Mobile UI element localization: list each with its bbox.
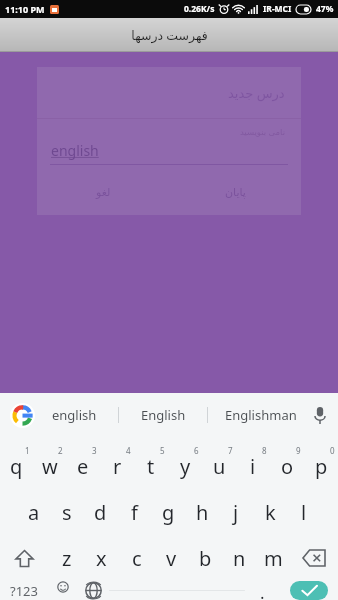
button[interactable]: z (49, 535, 84, 581)
staticText: Englishman (225, 406, 297, 424)
staticText: w (42, 453, 58, 480)
staticText: ?123 (10, 582, 38, 600)
button[interactable]: g (151, 489, 185, 535)
staticText: english (52, 406, 97, 424)
button[interactable]: Google search (10, 403, 35, 428)
staticText: 7 (228, 445, 233, 456)
button[interactable]: Voice input (308, 403, 332, 427)
button[interactable]: w (33, 443, 66, 489)
button[interactable]: j (219, 489, 253, 535)
staticText: k (265, 499, 276, 526)
button[interactable]: a (17, 489, 50, 535)
staticText: 4 (126, 445, 131, 456)
button[interactable]: . (245, 581, 279, 600)
staticText: English (141, 406, 186, 424)
button[interactable]: d (83, 489, 117, 535)
button[interactable]: y (168, 443, 202, 489)
staticText: لغو (96, 186, 111, 199)
button[interactable]: m (256, 535, 290, 581)
button[interactable]: t (134, 443, 168, 489)
button[interactable]: i (236, 443, 270, 489)
button[interactable]: r (100, 443, 134, 489)
staticText: m (264, 545, 283, 572)
button[interactable]: o (270, 443, 304, 489)
staticText: 0 (330, 445, 335, 456)
button[interactable]: f (117, 489, 151, 535)
staticText: english (51, 141, 99, 160)
staticText: j (233, 499, 239, 526)
staticText: 5 (160, 445, 165, 456)
staticText: l (301, 499, 307, 526)
staticText: 2 (58, 445, 63, 456)
button[interactable]: b (188, 535, 222, 581)
staticText: q (10, 453, 23, 480)
button[interactable]: Shift (0, 535, 49, 581)
button[interactable]: h (185, 489, 219, 535)
button[interactable]: v (154, 535, 188, 581)
button[interactable]: p (304, 443, 338, 489)
staticText: e (77, 453, 89, 480)
staticText: 6 (194, 445, 199, 456)
button[interactable]: s (50, 489, 83, 535)
button[interactable]: q (0, 443, 33, 489)
button[interactable]: n (222, 535, 256, 581)
staticText: i (250, 453, 256, 480)
staticText: u (213, 453, 226, 480)
staticText: . (260, 581, 265, 600)
button[interactable]: x (84, 535, 119, 581)
staticText: 8 (262, 445, 267, 456)
staticText: x (96, 545, 107, 572)
staticText: درس جدید (228, 84, 285, 102)
button[interactable]: l (287, 489, 321, 535)
staticText: پایان (225, 186, 246, 199)
staticText: b (199, 545, 212, 572)
staticText: فهرست درسها (131, 27, 208, 44)
staticText: v (166, 545, 177, 572)
staticText: 11:10 PM (5, 3, 45, 15)
button[interactable]: english (30, 393, 118, 437)
button[interactable]: Change language (78, 581, 109, 600)
staticText: n (233, 545, 246, 572)
button[interactable]: k (253, 489, 287, 535)
staticText: 0.26K/s (184, 3, 215, 15)
staticText: s (62, 499, 72, 526)
staticText: 1 (25, 445, 30, 456)
staticText: r (113, 453, 122, 480)
staticText: p (315, 453, 328, 480)
button[interactable]: Emoji (47, 581, 78, 600)
staticText: t (147, 453, 155, 480)
staticText: y (180, 453, 191, 480)
staticText: IR-MCI (263, 3, 292, 15)
staticText: 3 (92, 445, 97, 456)
staticText: d (94, 499, 107, 526)
staticText: 47% (316, 3, 334, 15)
button[interactable]: u (202, 443, 236, 489)
button[interactable]: Englishman (208, 393, 314, 437)
staticText: 9 (296, 445, 301, 456)
staticText: c (132, 545, 142, 572)
button[interactable]: e (66, 443, 100, 489)
staticText: a (28, 499, 40, 526)
button[interactable]: Backspace (290, 535, 338, 581)
button[interactable]: c (119, 535, 154, 581)
button[interactable]: ?123 (0, 581, 47, 600)
staticText: f (131, 499, 138, 526)
staticText: z (62, 545, 72, 572)
button[interactable]: Enter (290, 581, 328, 600)
button[interactable]: English (119, 393, 207, 437)
staticText: h (196, 499, 209, 526)
staticText: o (281, 453, 294, 480)
staticText: g (162, 499, 175, 526)
